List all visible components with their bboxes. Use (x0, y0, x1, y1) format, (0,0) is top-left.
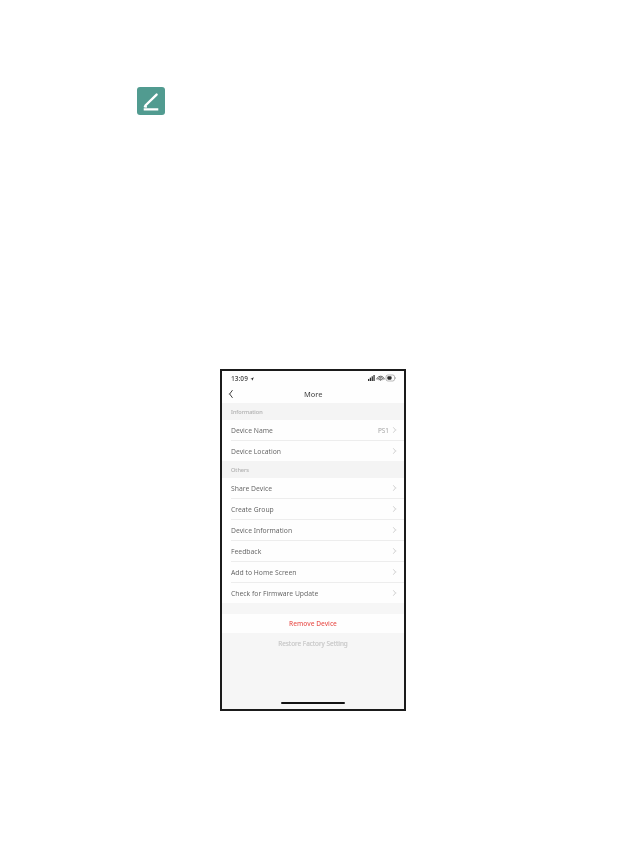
button[interactable]: Restore Factory Setting (222, 633, 404, 653)
staticText: More (304, 389, 323, 399)
button[interactable]: Device Location (222, 441, 404, 461)
staticText: Check for Firmware Update (231, 589, 319, 598)
button[interactable]: Share Device (222, 478, 404, 498)
staticText: PS1 (378, 426, 390, 435)
button[interactable]: Edit (137, 87, 165, 115)
button[interactable]: Back (222, 385, 240, 403)
staticText: Add to Home Screen (231, 568, 297, 577)
staticText: Device Information (231, 526, 293, 535)
staticText: Share Device (231, 484, 272, 493)
staticText: Create Group (231, 505, 274, 514)
button[interactable]: Add to Home Screen (222, 562, 404, 582)
staticText: Information (231, 408, 263, 416)
staticText: Others (231, 466, 249, 474)
staticText: Remove Device (289, 619, 337, 628)
button[interactable]: Feedback (222, 541, 404, 561)
staticText: Device Location (231, 447, 281, 456)
staticText: Restore Factory Setting (278, 639, 348, 648)
button[interactable]: Device Name (222, 420, 404, 440)
staticText: 13:09 (231, 374, 248, 383)
button[interactable]: Device Information (222, 520, 404, 540)
button[interactable]: Remove Device (222, 614, 404, 633)
staticText: Feedback (231, 547, 262, 556)
button[interactable]: Check for Firmware Update (222, 583, 404, 603)
button[interactable]: Create Group (222, 499, 404, 519)
staticText: Device Name (231, 426, 273, 435)
